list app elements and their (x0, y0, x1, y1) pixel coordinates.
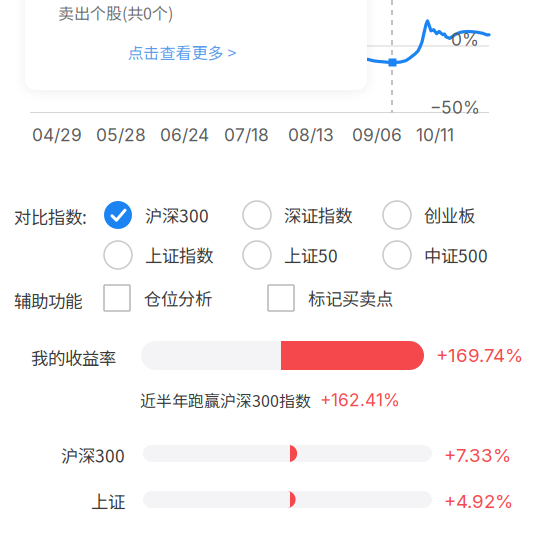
staticText: +162.41% (320, 389, 400, 410)
button[interactable]: 上证50 (243, 238, 375, 272)
staticText: 辅助功能 (14, 288, 82, 313)
staticText: 08/13 (288, 124, 334, 145)
staticText: 沪深300 (61, 442, 125, 468)
button[interactable]: 标记买卖点 (268, 281, 443, 315)
staticText: 上证指数 (145, 242, 213, 268)
staticText: 对比指数: (14, 204, 87, 229)
staticText: 点击查看更多 > (127, 40, 236, 64)
staticText: 标记买卖点 (308, 285, 393, 311)
staticText: 0% (451, 29, 479, 50)
staticText: 04/29 (32, 124, 82, 145)
staticText: −50% (430, 97, 480, 118)
button[interactable]: 沪深300 (104, 198, 236, 232)
button[interactable]: 创业板 (383, 198, 515, 232)
staticText: +169.74% (436, 344, 523, 367)
staticText: +4.92% (444, 490, 513, 513)
staticText: 深证指数 (284, 202, 352, 228)
staticText: 07/18 (224, 124, 269, 145)
staticText: 09/06 (352, 124, 402, 145)
staticText: 近半年跑赢沪深300指数 (140, 388, 311, 412)
staticText: 10/11 (416, 124, 454, 145)
staticText: 上证50 (284, 242, 338, 268)
staticText: 卖出个股(共0个) (58, 1, 173, 24)
button[interactable]: 仓位分析 (104, 281, 264, 315)
staticText: 上证 (91, 488, 125, 514)
staticText: +7.33% (444, 444, 511, 467)
staticText: 创业板 (424, 202, 475, 228)
staticText: 06/24 (160, 124, 209, 145)
button[interactable]: 上证指数 (104, 238, 236, 272)
button[interactable]: 中证500 (383, 238, 515, 272)
staticText: 沪深300 (145, 202, 209, 228)
button[interactable]: 深证指数 (243, 198, 375, 232)
staticText: 仓位分析 (144, 285, 212, 311)
staticText: 05/28 (96, 124, 146, 145)
button[interactable]: 点击查看更多 > (11, 39, 353, 65)
staticText: 中证500 (424, 242, 488, 268)
staticText: 我的收益率 (31, 345, 116, 370)
